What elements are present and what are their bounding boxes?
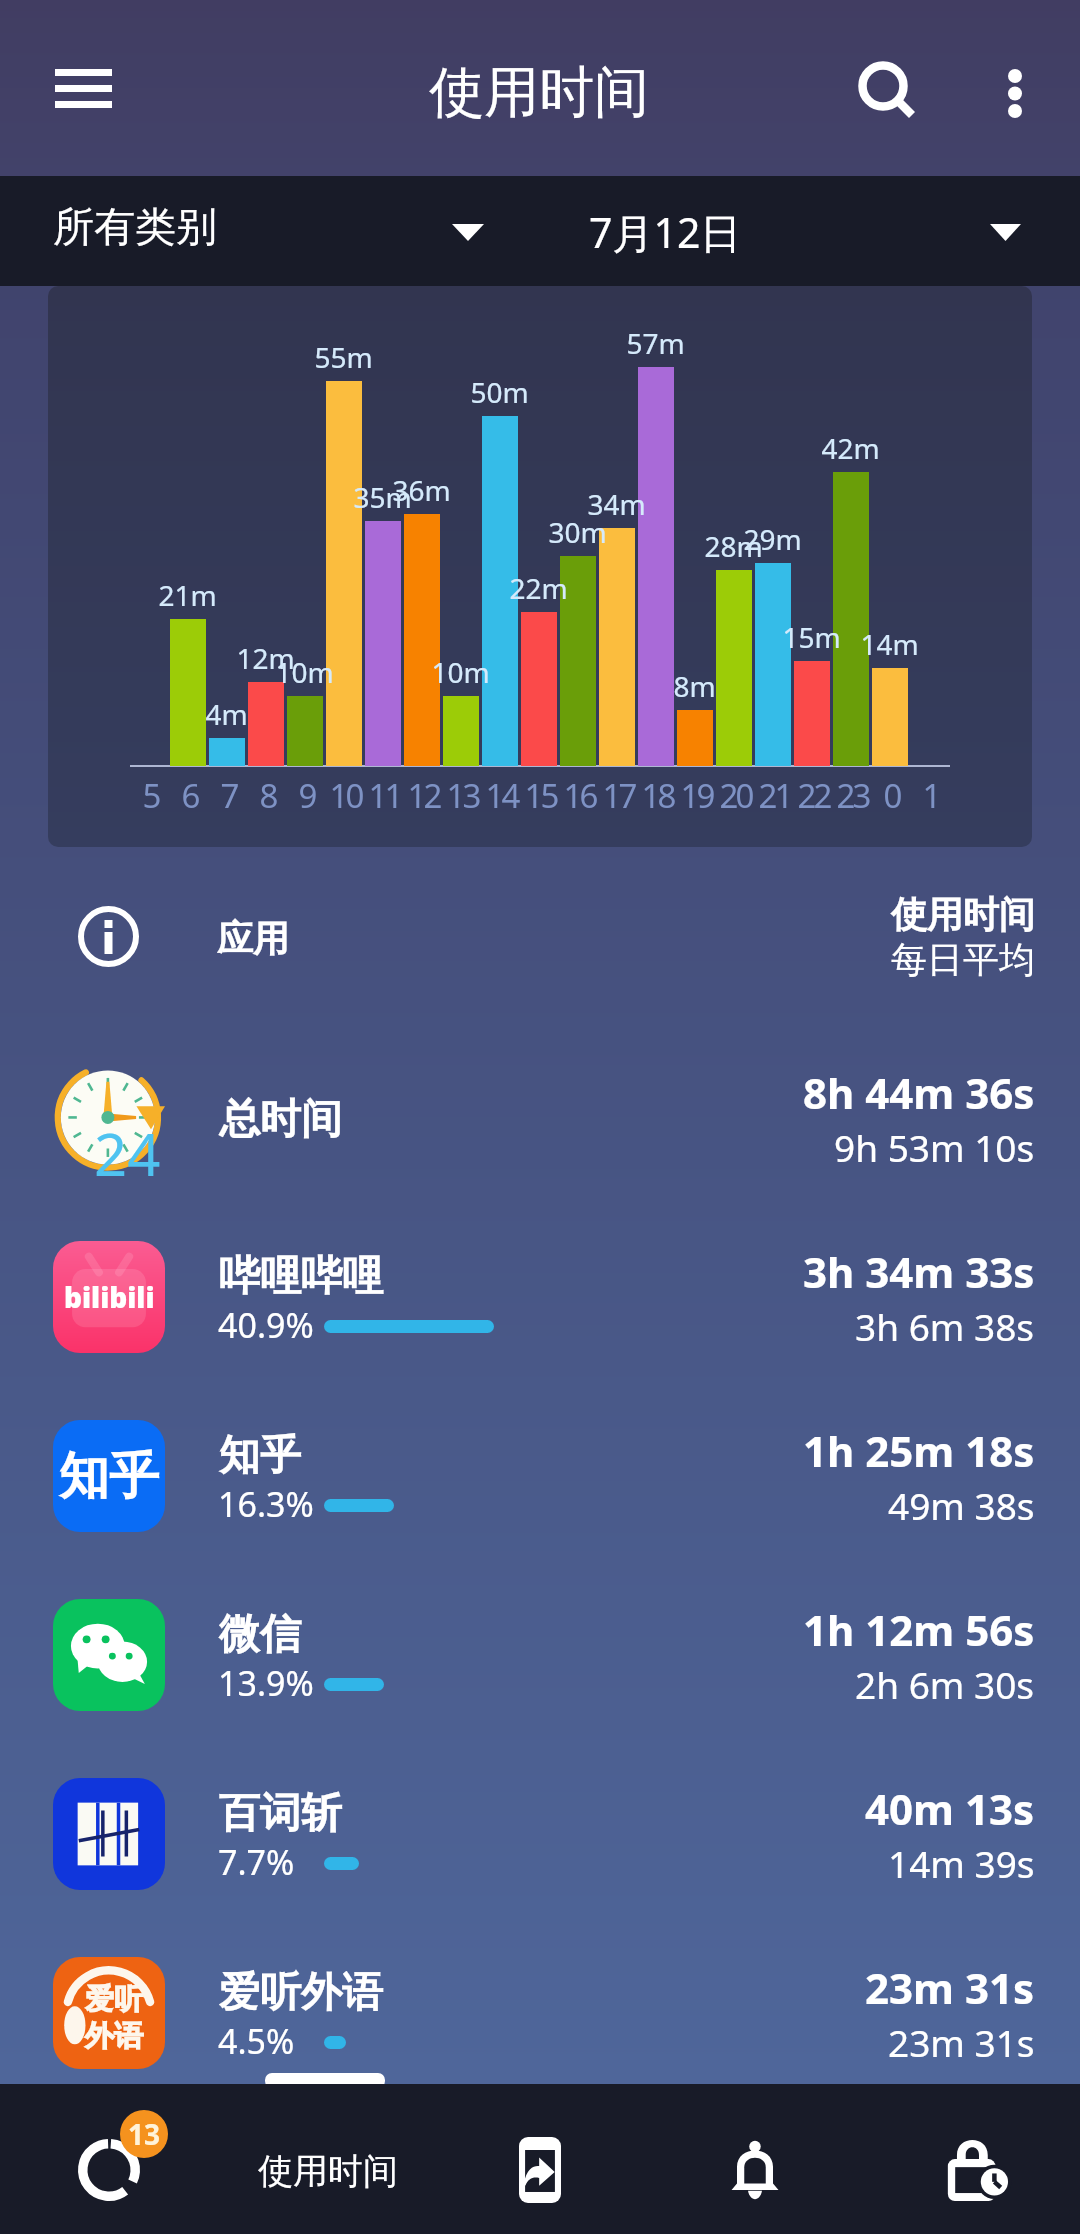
staticText: 知乎: [219, 1430, 301, 1482]
staticText: 23m 31s: [888, 2017, 1035, 2067]
button[interactable]: bilibili: [0, 1207, 1080, 1386]
staticText: 使用时间: [891, 892, 1035, 937]
staticText: 爱听: [85, 1981, 143, 2018]
staticText: 爱听外语: [219, 1967, 383, 2019]
staticText: 23m 31s: [865, 1959, 1035, 2016]
button[interactable]: 知乎: [0, 1386, 1080, 1565]
button[interactable]: 爱听: [0, 1923, 1080, 2102]
staticText: 微信: [219, 1609, 301, 1661]
staticText: 24: [94, 1114, 161, 1193]
staticText: 总时间: [219, 1094, 342, 1146]
staticText: 3h 6m 38s: [855, 1301, 1035, 1351]
staticText: 8h 44m 36s: [803, 1064, 1035, 1121]
staticText: 40m 13s: [865, 1780, 1035, 1837]
button[interactable]: More options: [965, 34, 1065, 142]
staticText: 知乎: [59, 1445, 159, 1508]
staticText: 每日平均: [891, 937, 1035, 982]
staticText: 4.5%: [218, 2018, 295, 2064]
button[interactable]: 13: [0, 2084, 430, 2234]
staticText: 外语: [85, 2018, 143, 2055]
button[interactable]: Search: [828, 34, 938, 142]
button[interactable]: Open navigation menu: [28, 34, 138, 142]
button[interactable]: Send to device: [460, 2084, 620, 2234]
staticText: 哔哩哔哩: [219, 1251, 383, 1303]
staticText: 40.9%: [218, 1302, 314, 1348]
button[interactable]: 7月12日: [540, 176, 1080, 286]
staticText: 百词斩: [219, 1788, 342, 1840]
staticText: 7月12日: [589, 204, 742, 260]
staticText: 所有类别: [53, 202, 217, 254]
staticText: bilibili: [64, 1278, 155, 1316]
staticText: 13: [128, 2115, 161, 2153]
button[interactable]: Notifications: [680, 2084, 830, 2234]
staticText: 应用: [217, 916, 289, 961]
button[interactable]: App lock: [900, 2084, 1060, 2234]
button[interactable]: 24: [0, 1028, 1080, 1207]
staticText: 使用时间: [258, 2149, 398, 2193]
staticText: 1h 25m 18s: [803, 1422, 1035, 1479]
button[interactable]: 所有类别: [0, 176, 540, 286]
staticText: 7.7%: [218, 1839, 295, 1885]
staticText: 13.9%: [218, 1660, 314, 1706]
staticText: 3h 34m 33s: [803, 1243, 1035, 1300]
staticText: 14m 39s: [888, 1838, 1035, 1888]
staticText: 16.3%: [218, 1481, 314, 1527]
button[interactable]: 微信: [0, 1565, 1080, 1744]
staticText: 9h 53m 10s: [834, 1122, 1035, 1172]
staticText: 使用时间: [429, 58, 649, 127]
button[interactable]: 百词斩: [0, 1744, 1080, 1923]
staticText: 1h 12m 56s: [803, 1601, 1035, 1658]
staticText: 49m 38s: [888, 1480, 1035, 1530]
button[interactable]: About app usage: [58, 886, 159, 987]
staticText: 2h 6m 30s: [855, 1659, 1035, 1709]
